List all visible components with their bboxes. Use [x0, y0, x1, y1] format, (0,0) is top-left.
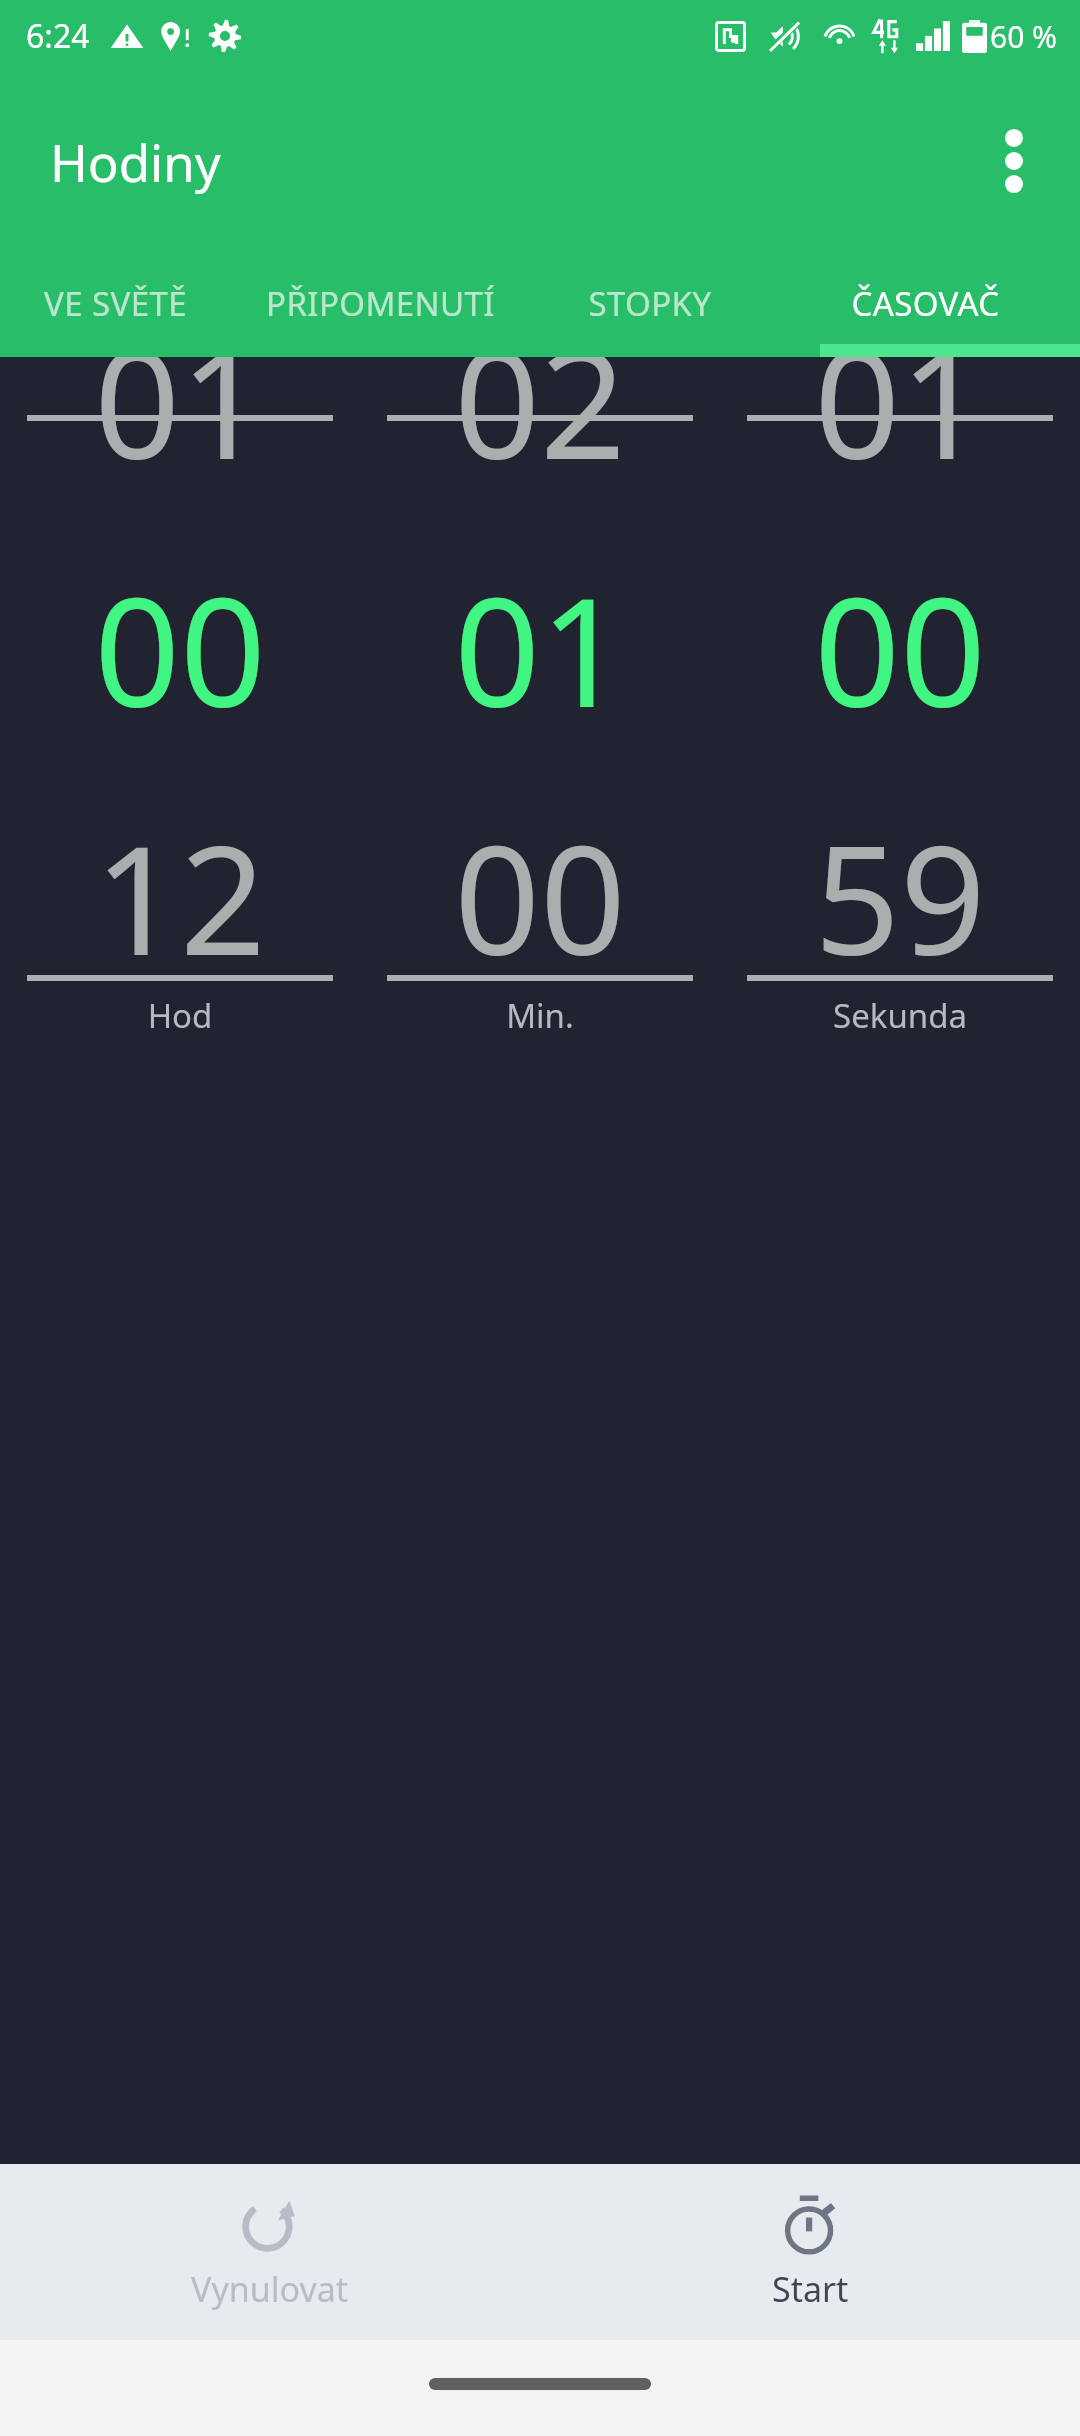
staticText: Min. [360, 993, 720, 1038]
button[interactable]: STOPKY [530, 250, 770, 357]
button[interactable]: More options [968, 115, 1060, 207]
button[interactable]: 02 [360, 357, 720, 1077]
staticText: Sekunda [720, 993, 1080, 1038]
button[interactable]: PŘIPOMENUTÍ [230, 250, 530, 357]
staticText: 59 [720, 795, 1080, 978]
button[interactable]: ČASOVAČ [770, 250, 1080, 357]
staticText: VE SVĚTĚ [44, 281, 187, 326]
staticText: 60 % [990, 16, 1058, 57]
button[interactable]: 01 [720, 357, 1080, 1077]
button[interactable]: VE SVĚTĚ [0, 250, 230, 357]
staticText: 00 [0, 547, 360, 751]
staticText: PŘIPOMENUTÍ [266, 281, 495, 326]
staticText: Vynulovat [191, 2266, 349, 2312]
staticText: 6:24 [26, 14, 90, 58]
staticText: 00 [720, 547, 1080, 751]
staticText: STOPKY [588, 281, 712, 326]
staticText: 02 [360, 357, 720, 503]
button[interactable]: 01 [0, 357, 360, 1077]
staticText: Start [772, 2266, 849, 2312]
button[interactable]: Vynulovat [0, 2164, 540, 2340]
staticText: ČASOVAČ [851, 281, 1000, 326]
staticText: Hodiny [50, 127, 221, 196]
staticText: Hod [0, 993, 360, 1038]
staticText: 01 [360, 547, 720, 751]
staticText: 12 [0, 795, 360, 978]
button[interactable]: Start [540, 2164, 1080, 2340]
staticText: 01 [0, 357, 360, 503]
staticText: 00 [360, 795, 720, 978]
staticText: 01 [720, 357, 1080, 503]
